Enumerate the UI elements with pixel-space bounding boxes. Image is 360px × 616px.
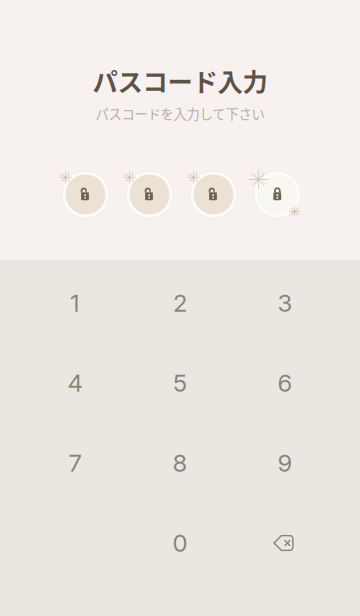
button[interactable]: 8	[127, 423, 232, 503]
button[interactable]: 5	[127, 343, 232, 423]
staticText: 5	[173, 368, 187, 397]
staticText: 7	[68, 448, 81, 477]
button[interactable]: 7	[22, 423, 127, 503]
staticText: 6	[277, 368, 292, 397]
button[interactable]: 4	[22, 343, 127, 423]
button[interactable]: 3	[232, 263, 337, 343]
staticText: 4	[67, 368, 82, 397]
button[interactable]: 0	[127, 503, 232, 583]
staticText: 8	[172, 448, 187, 477]
button[interactable]: 2	[127, 263, 232, 343]
staticText: 1	[70, 288, 80, 317]
staticText: パスコードを入力して下さい	[95, 104, 264, 123]
button[interactable]: 6	[232, 343, 337, 423]
staticText: 0	[172, 528, 187, 557]
button[interactable]: 1	[22, 263, 127, 343]
staticText: パスコード入力	[92, 62, 267, 99]
staticText: 2	[173, 288, 187, 317]
button[interactable]: Delete	[232, 503, 337, 583]
staticText: 3	[277, 288, 292, 317]
button[interactable]: 9	[232, 423, 337, 503]
staticText: 9	[277, 448, 292, 477]
